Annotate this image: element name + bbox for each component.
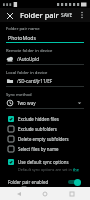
button[interactable]: Home (37, 187, 53, 200)
button[interactable]: Folder pair enabled (6, 176, 84, 187)
button[interactable]: /AutoUpld (6, 55, 84, 65)
button[interactable]: Close (4, 10, 15, 21)
staticText: the app settings (73, 167, 84, 172)
staticText: Local folder in device (6, 70, 48, 76)
staticText: Exclude subfolders (18, 126, 57, 132)
button[interactable]: Exclude subfolders (6, 124, 84, 134)
button[interactable]: SAVE (59, 11, 75, 20)
button[interactable]: More options (78, 10, 86, 20)
button[interactable]: PhotoMods (6, 34, 84, 43)
button[interactable]: Back (11, 187, 27, 200)
staticText: /SD-card/jr11/EF (17, 78, 53, 84)
staticText: Folder pair (20, 10, 59, 20)
staticText: Default sync options are set in (18, 167, 73, 172)
staticText: /AutoUpld (17, 56, 40, 62)
button[interactable]: Recent apps (64, 187, 80, 200)
staticText: Delete empty subfolders (18, 136, 69, 142)
button[interactable]: /SD-card/jr11/EF (6, 77, 84, 87)
button[interactable]: Default sync options are set in (6, 167, 84, 172)
staticText: PhotoMods (8, 34, 37, 41)
button[interactable]: Two way (6, 99, 84, 109)
staticText: Folder pair name (6, 26, 40, 32)
button[interactable]: Use default sync options (6, 157, 84, 167)
staticText: SAVE (61, 12, 73, 19)
button[interactable]: Exclude hidden files (6, 114, 84, 124)
staticText: Select files by name (18, 146, 59, 152)
staticText: Folder pair enabled (8, 179, 49, 185)
staticText: Two way (17, 100, 36, 106)
staticText: Remote folder in device (6, 48, 53, 54)
staticText: Use default sync options (18, 159, 69, 165)
button[interactable]: Delete empty subfolders (6, 134, 84, 144)
staticText: Exclude hidden files (18, 116, 59, 122)
button[interactable]: Select files by name (6, 144, 84, 154)
staticText: Sync method (6, 92, 32, 98)
